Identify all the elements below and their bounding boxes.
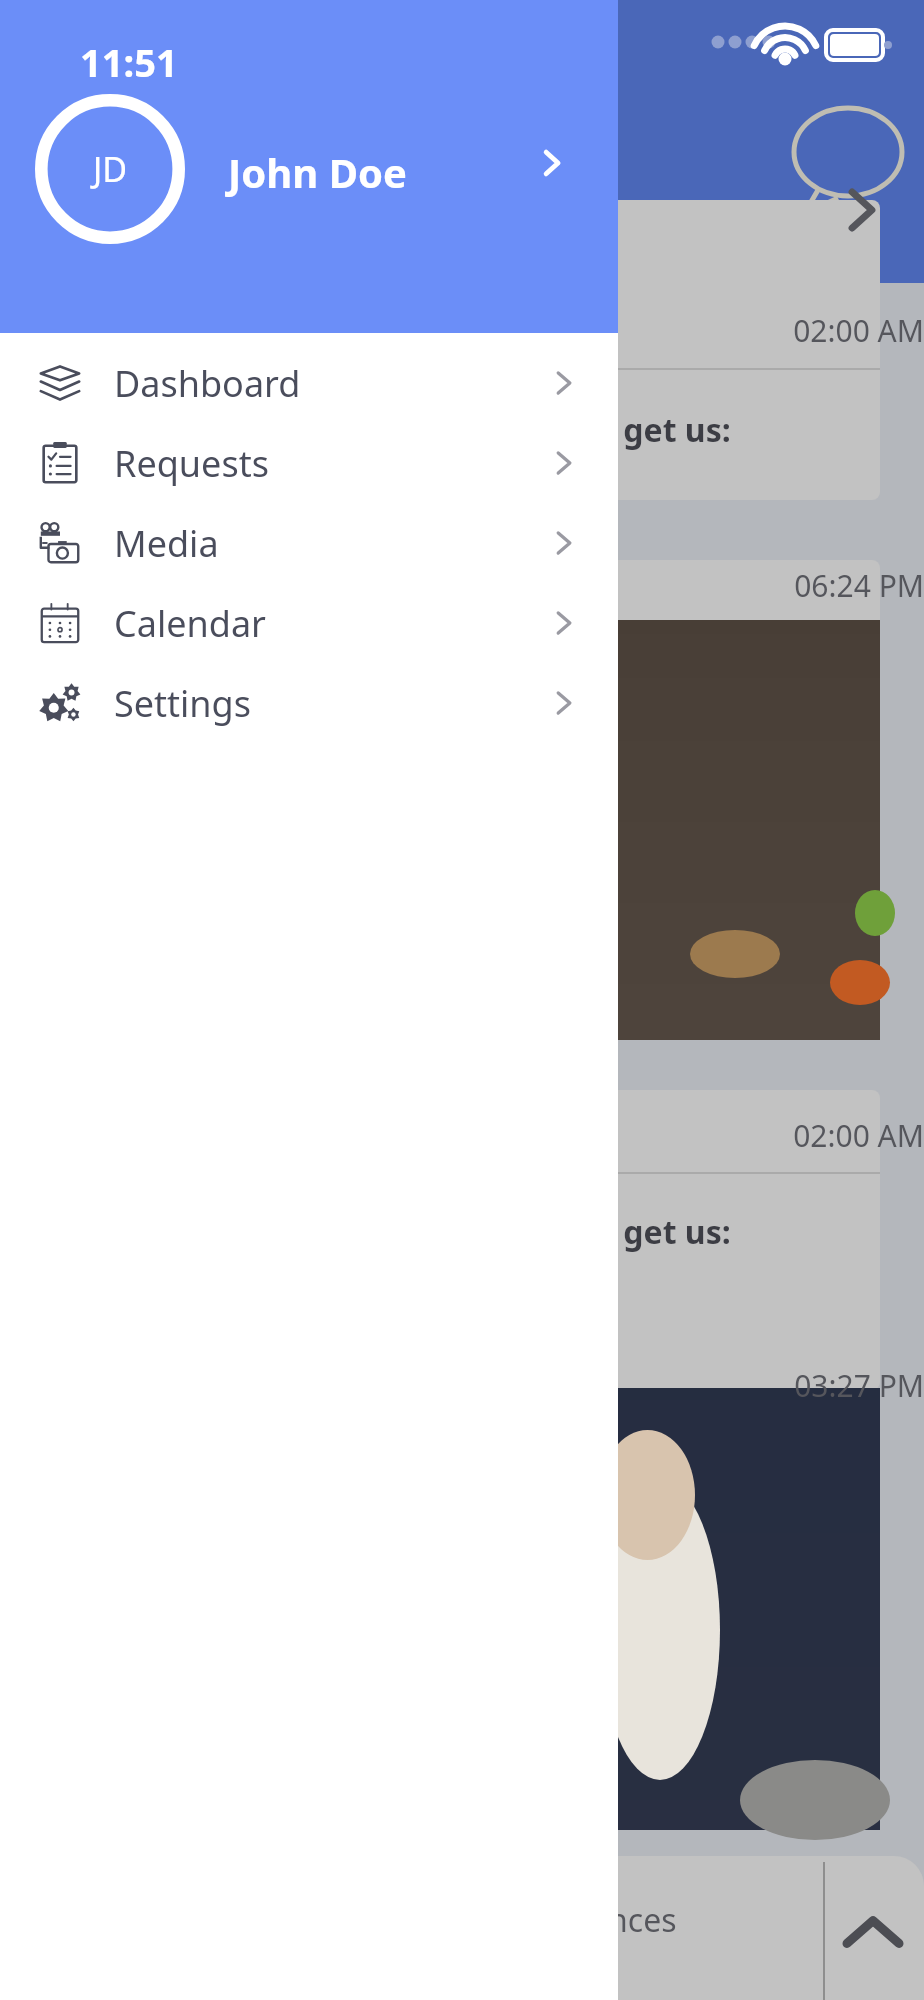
staticText: Settings	[114, 679, 251, 728]
staticText: John Doe	[228, 145, 407, 199]
staticText: Calendar	[114, 599, 266, 648]
staticText: 11:51	[80, 36, 178, 88]
staticText: 02:00 AM	[0, 1115, 924, 1156]
button[interactable]: Settings	[0, 663, 618, 743]
staticText: o get us:	[595, 408, 731, 452]
staticText: JD	[93, 146, 128, 192]
staticText: 02:00 AM	[0, 310, 924, 351]
staticText: o get us:	[595, 1210, 731, 1254]
button[interactable]: 11:51	[0, 0, 618, 333]
button[interactable]: Calendar	[0, 583, 618, 663]
staticText: nces	[608, 1898, 677, 1942]
staticText: Dashboard	[114, 359, 301, 408]
staticText: 06:24 PM	[0, 565, 924, 606]
button[interactable]: Dashboard	[0, 343, 618, 423]
staticText: 03:27 PM	[0, 1365, 924, 1406]
button[interactable]: Requests	[0, 423, 618, 503]
staticText: Media	[114, 519, 219, 568]
staticText: Requests	[114, 439, 269, 488]
button[interactable]: Media	[0, 503, 618, 583]
button[interactable]: Open profile	[520, 128, 590, 198]
